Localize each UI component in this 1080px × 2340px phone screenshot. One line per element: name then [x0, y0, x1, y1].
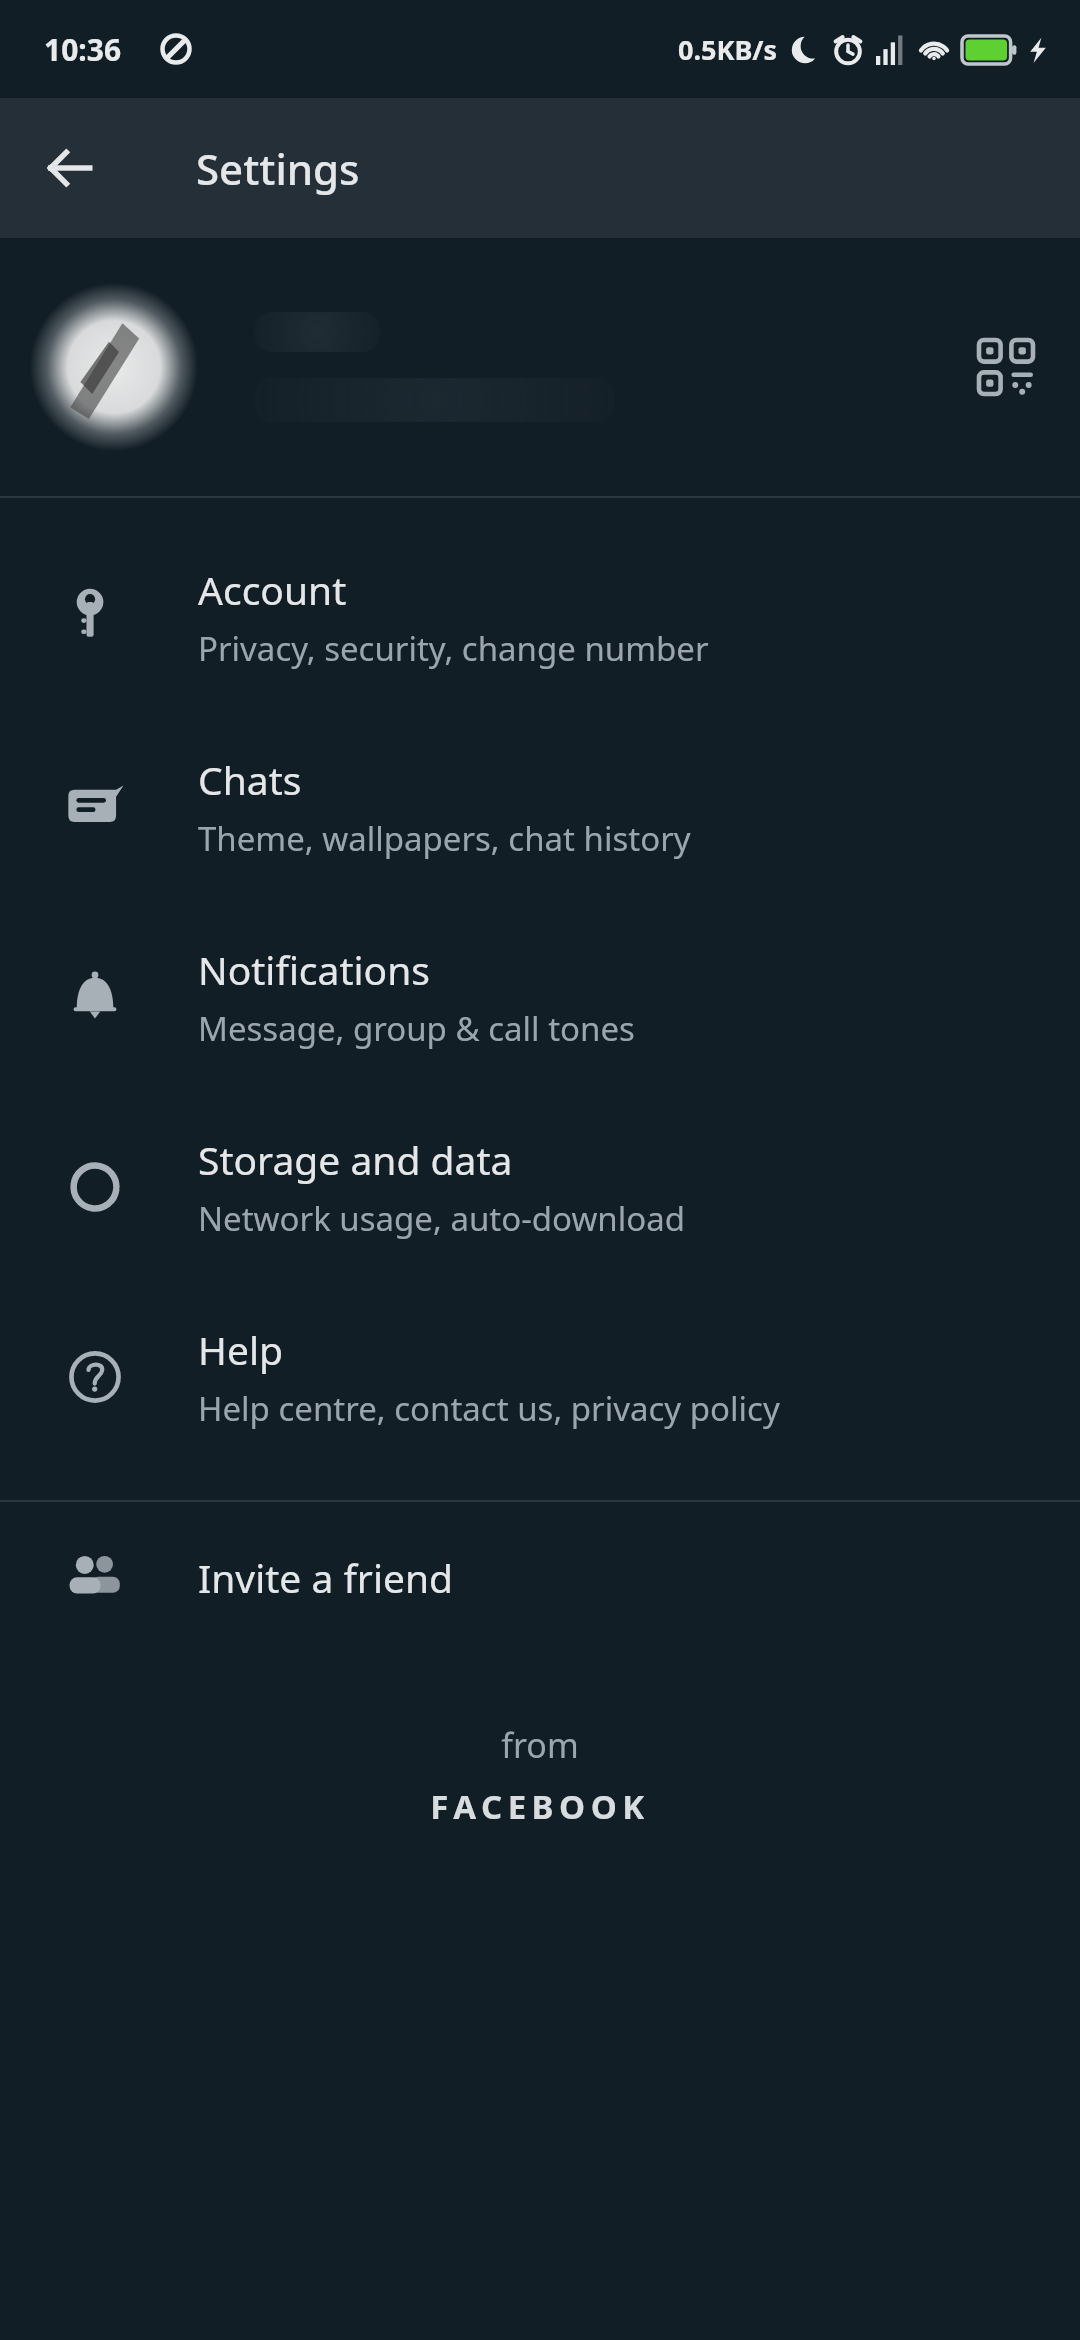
staticText: Help — [198, 1323, 283, 1376]
staticText: 0.5KB/s — [678, 31, 778, 68]
staticText: Help centre, contact us, privacy policy — [198, 1386, 780, 1431]
staticText: Settings — [196, 140, 360, 197]
staticText: Theme, wallpapers, chat history — [198, 816, 691, 861]
button[interactable]: Back — [28, 126, 112, 210]
button[interactable]: Notifications — [0, 902, 1080, 1092]
staticText: from — [501, 1722, 579, 1768]
button[interactable]: Chats — [0, 712, 1080, 902]
staticText: Chats — [198, 753, 302, 806]
staticText: Notifications — [198, 943, 430, 996]
button[interactable]: Storage and data — [0, 1092, 1080, 1282]
button[interactable]: QR code — [958, 319, 1054, 415]
staticText: FACEBOOK — [430, 1784, 650, 1829]
staticText: 10:36 — [44, 29, 122, 70]
button[interactable]: Account — [0, 522, 1080, 712]
staticText: Invite a friend — [198, 1551, 454, 1604]
staticText: Account — [198, 563, 347, 616]
staticText: Message, group & call tones — [198, 1006, 635, 1051]
staticText: Network usage, auto-download — [198, 1196, 686, 1241]
staticText: Privacy, security, change number — [198, 626, 709, 671]
button[interactable]: QR code — [0, 238, 1080, 496]
button[interactable]: Help — [0, 1282, 1080, 1472]
button[interactable]: Invite a friend — [0, 1502, 1080, 1652]
staticText: Storage and data — [198, 1133, 513, 1186]
